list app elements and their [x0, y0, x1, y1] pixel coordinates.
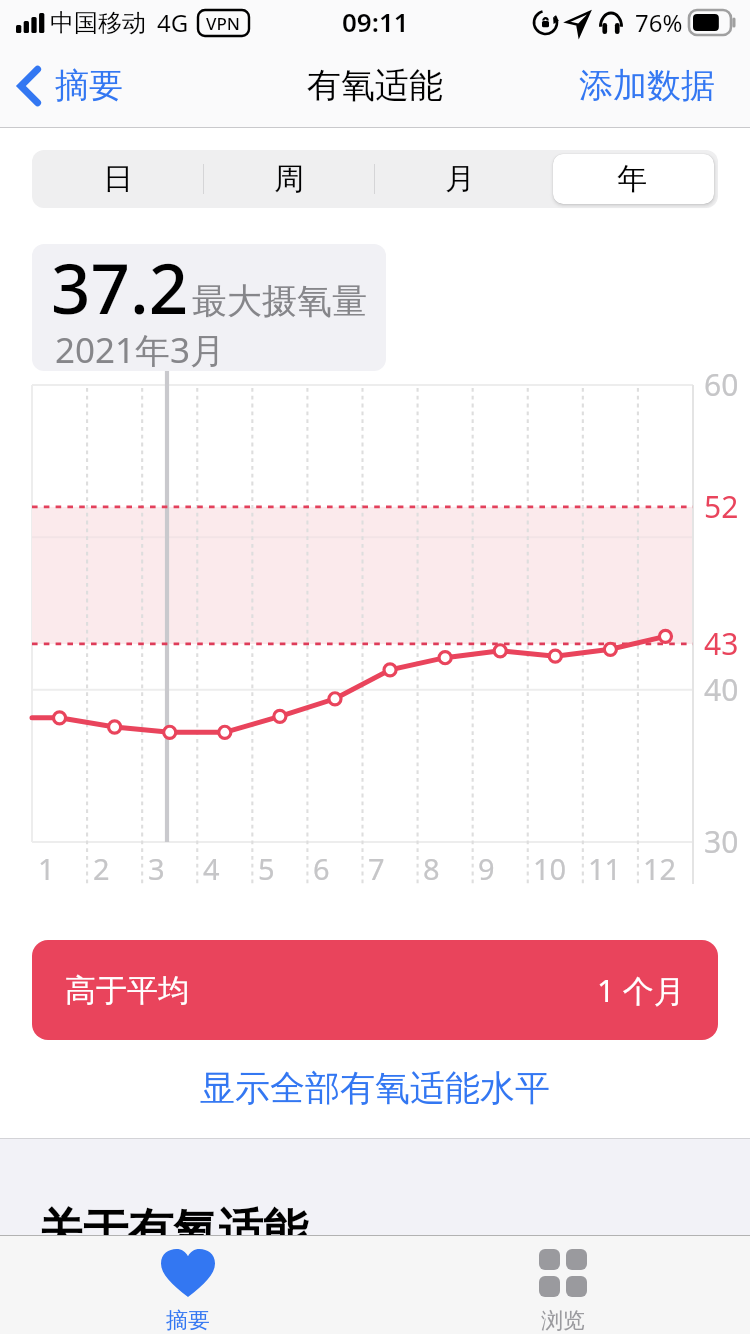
staticText: 7 — [368, 849, 385, 888]
staticText: 76% — [635, 6, 683, 39]
staticText: VPN — [206, 12, 241, 35]
staticText: 关于有氧适能 — [38, 1203, 308, 1260]
staticText: 3 — [148, 849, 165, 888]
button[interactable]: 日 — [32, 150, 203, 208]
staticText: 52 — [704, 486, 739, 527]
button[interactable]: 高于平均 — [32, 940, 718, 1040]
staticText: 37.2 — [51, 244, 189, 334]
staticText: 5 — [258, 849, 275, 888]
staticText: 有氧适能 — [307, 64, 443, 107]
button[interactable]: 周 — [203, 150, 374, 208]
staticText: 4G — [157, 6, 189, 39]
button[interactable]: Browse — [375, 1236, 750, 1334]
staticText: 添加数据 — [579, 64, 715, 107]
staticText: 43 — [704, 623, 739, 664]
staticText: 4 — [203, 849, 220, 888]
other: Browse — [539, 1249, 587, 1297]
staticText: 6 — [313, 849, 330, 888]
staticText: 月 — [445, 160, 475, 198]
button[interactable]: 年 — [546, 150, 718, 208]
staticText: 摘要 — [55, 64, 123, 107]
staticText: 8 — [423, 849, 440, 888]
button[interactable]: 添加数据 — [569, 56, 750, 115]
staticText: 11 — [588, 849, 622, 888]
staticText: 日 — [103, 160, 133, 198]
button[interactable]: 显示全部有氧适能水平 — [0, 1058, 750, 1118]
staticText: 2021年3月 — [55, 326, 226, 371]
staticText: 09:11 — [342, 4, 409, 39]
staticText: 2 — [93, 849, 110, 888]
staticText: 最大摄氧量 — [192, 279, 367, 323]
staticText: 中国移动 — [50, 8, 146, 38]
button[interactable]: 摘要 — [0, 56, 133, 115]
staticText: 1 — [38, 849, 55, 888]
staticText: 1 个月 — [597, 969, 685, 1011]
other: Summary — [161, 1249, 215, 1297]
staticText: 高于平均 — [65, 971, 189, 1010]
staticText: 周 — [274, 160, 304, 198]
staticText: 浏览 — [541, 1307, 585, 1334]
staticText: 40 — [704, 669, 739, 710]
staticText: 12 — [643, 849, 677, 888]
staticText: 显示全部有氧适能水平 — [200, 1066, 550, 1110]
staticText: 9 — [478, 849, 495, 888]
staticText: 10 — [533, 849, 567, 888]
button[interactable]: 月 — [374, 150, 546, 208]
button[interactable]: Summary — [0, 1236, 375, 1334]
staticText: 摘要 — [166, 1307, 210, 1334]
staticText: 60 — [704, 364, 739, 405]
staticText: 年 — [617, 160, 647, 198]
staticText: 30 — [704, 821, 739, 862]
